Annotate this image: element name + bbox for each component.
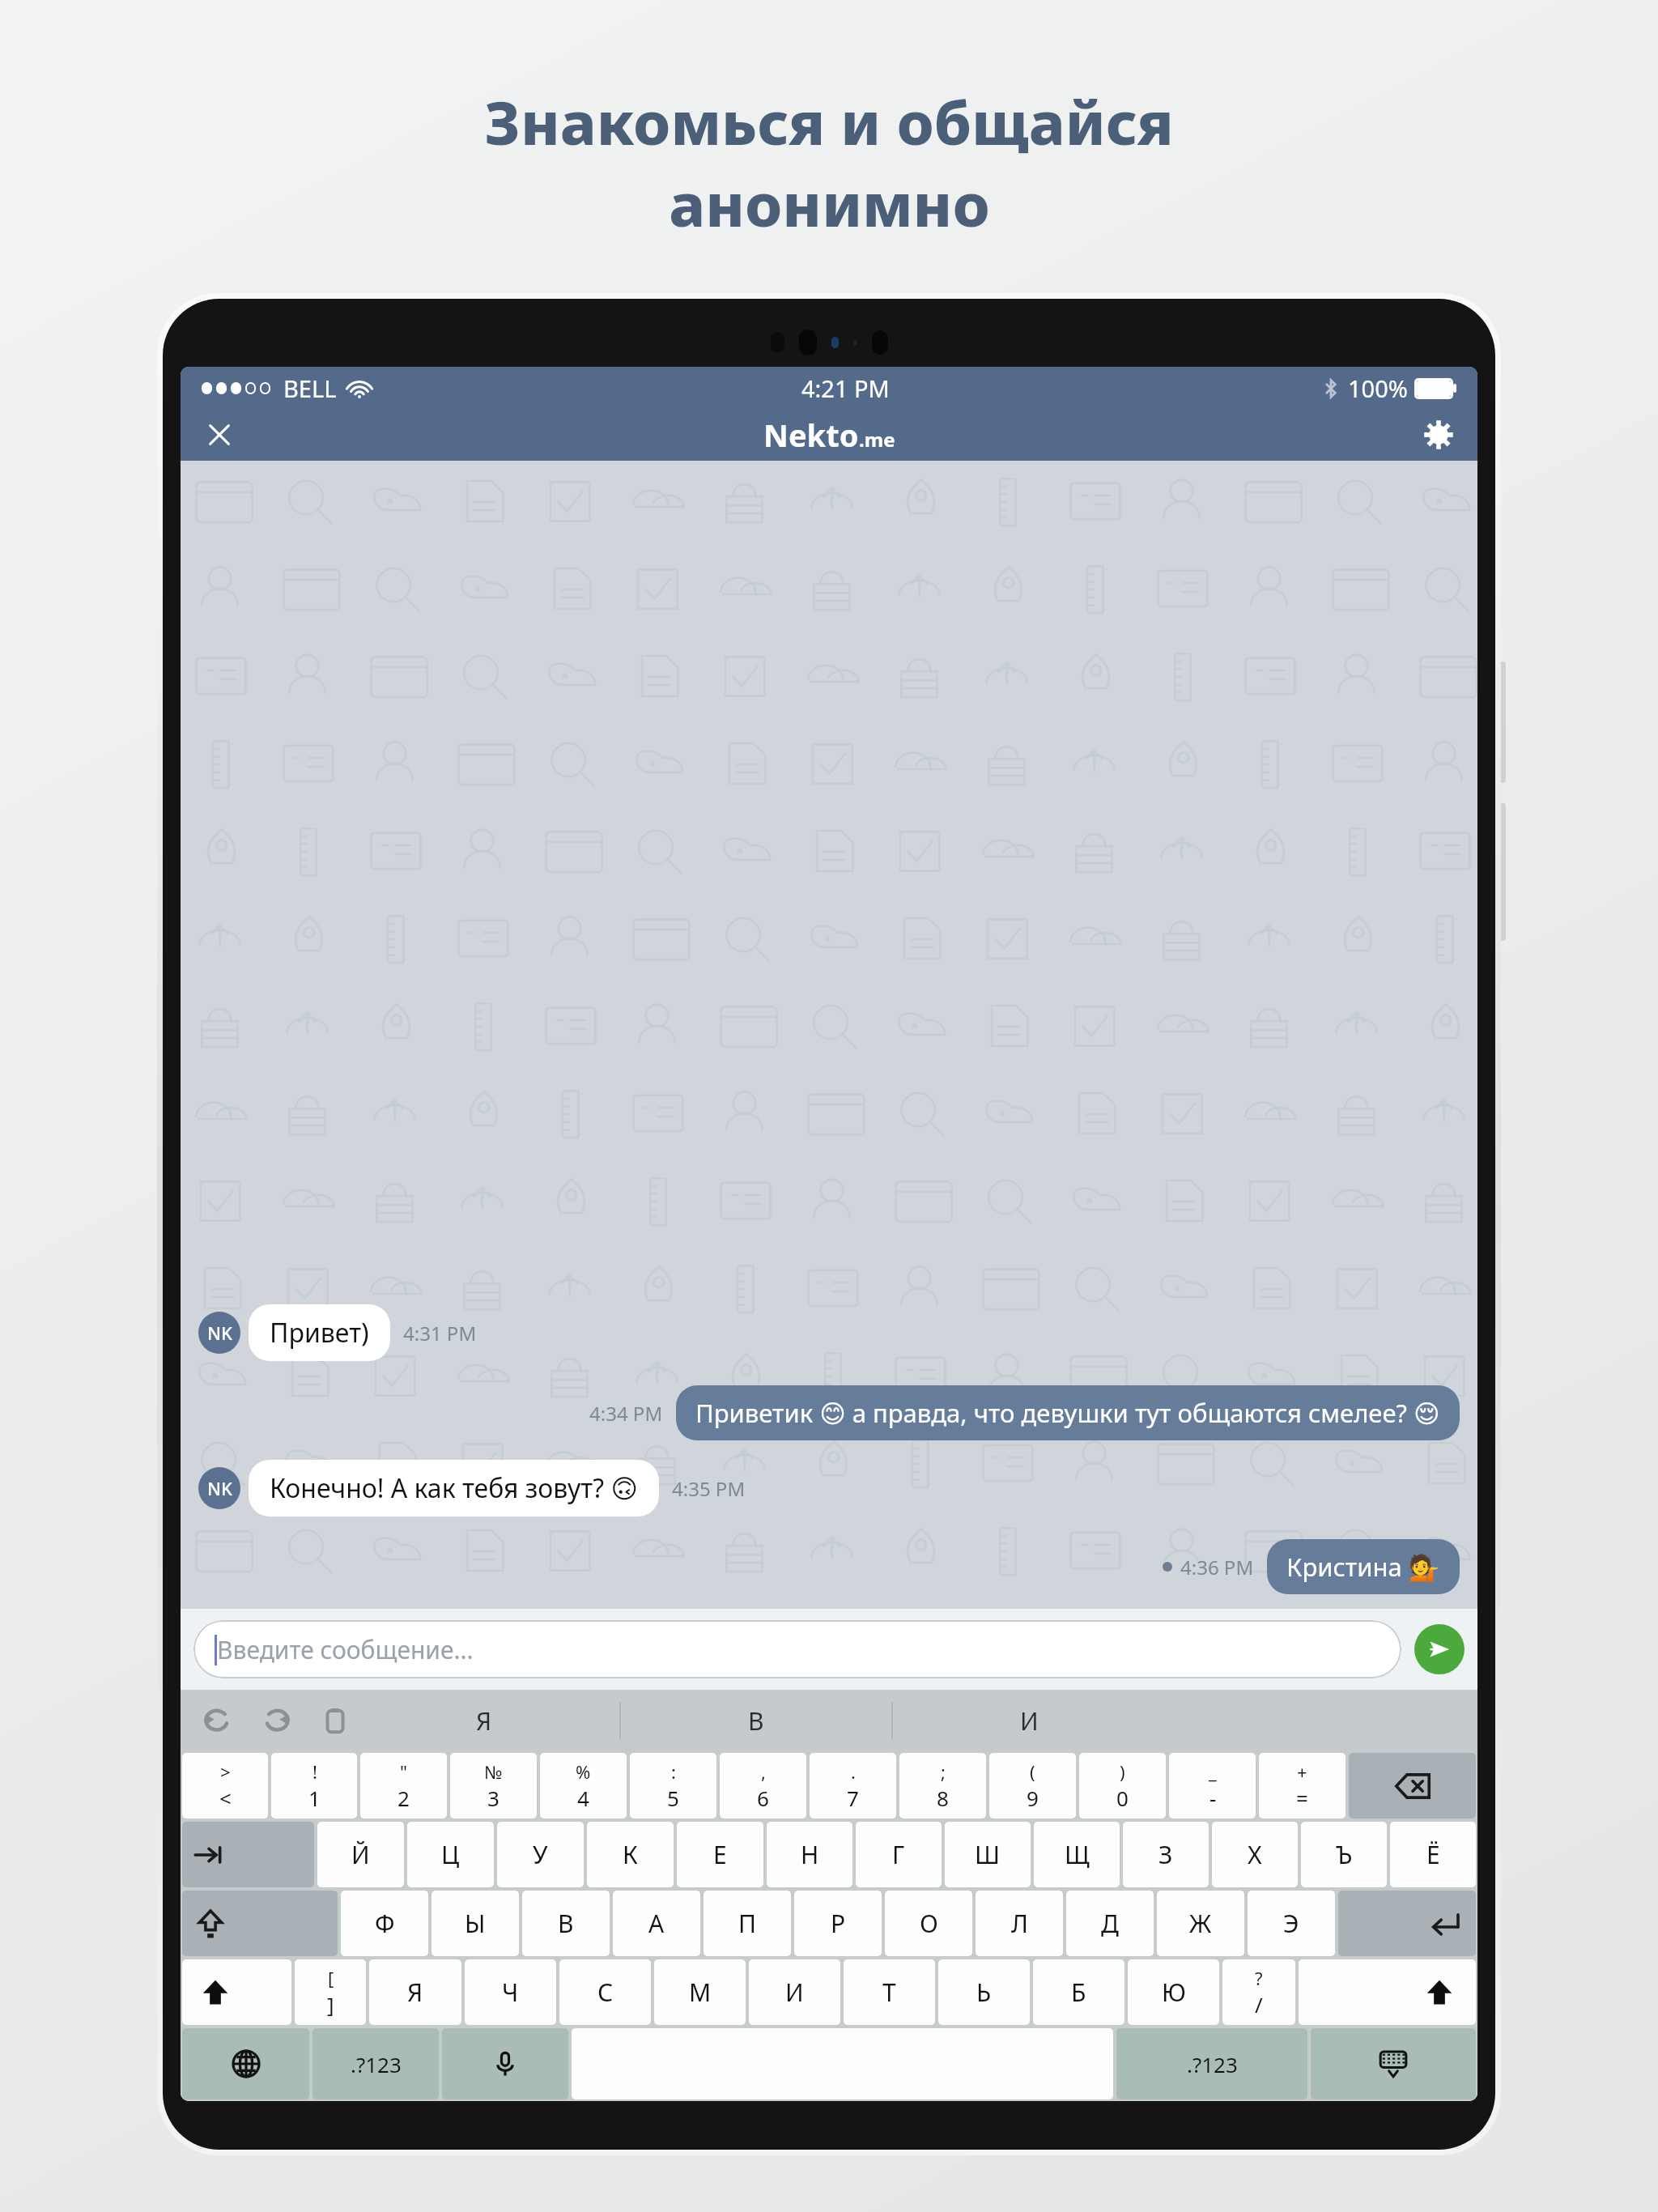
button[interactable]: ; [899,1753,986,1819]
button[interactable]: Ь [938,1959,1030,2025]
button[interactable]: Г [856,1822,942,1887]
button[interactable]: Приветик 😊 а правда, что девушки тут общ… [676,1385,1460,1440]
button[interactable]: Send [1414,1624,1465,1674]
staticText: > [220,1759,231,1784]
button[interactable]: Hide keyboard [1311,2028,1476,2099]
button[interactable]: ? [1222,1959,1295,2025]
button[interactable]: Конечно! А как тебя зовут? 🙃 [249,1460,659,1516]
button[interactable]: Э [1248,1891,1335,1956]
staticText: Ы [465,1907,486,1940]
button[interactable]: Кристина 💁 [1267,1539,1460,1594]
button[interactable]: Shift [1299,1959,1476,2025]
staticText: + [1297,1759,1307,1784]
staticText: Ш [975,1838,1001,1871]
button[interactable]: Х [1212,1822,1298,1887]
button[interactable]: М [654,1959,746,2025]
button[interactable]: _ [1169,1753,1256,1819]
button[interactable]: Caps lock [182,1891,338,1956]
staticText: Л [1011,1907,1028,1940]
button[interactable]: Shift [182,1959,291,2025]
button[interactable]: Ё [1390,1822,1476,1887]
button[interactable]: Change language [182,2028,309,2099]
button[interactable]: Ц [407,1822,494,1887]
button[interactable]: С [559,1959,651,2025]
button[interactable]: Я [369,1959,461,2025]
staticText: Введите сообщение... [217,1633,474,1666]
button[interactable]: Й [317,1822,404,1887]
button[interactable]: > [182,1753,268,1819]
button[interactable]: Close [198,414,240,456]
button[interactable]: Л [976,1891,1063,1956]
button[interactable]: Введите сообщение... [193,1620,1401,1678]
button[interactable]: О [885,1891,972,1956]
button[interactable]: Привет) [249,1304,390,1361]
button[interactable]: . [810,1753,896,1819]
button[interactable]: Ш [945,1822,1031,1887]
button[interactable]: З [1123,1822,1209,1887]
button[interactable]: П [704,1891,791,1956]
button[interactable]: Д [1066,1891,1154,1956]
staticText: Щ [1065,1838,1090,1871]
button[interactable]: Settings [1418,414,1460,456]
button[interactable]: : [630,1753,716,1819]
staticText: Ю [1162,1976,1186,2009]
staticText: 3 [487,1784,500,1812]
button[interactable]: + [1259,1753,1346,1819]
button[interactable]: Space [572,2028,1113,2099]
button[interactable]: А [613,1891,700,1956]
button[interactable]: Ю [1128,1959,1219,2025]
button[interactable]: .?123 [312,2028,439,2099]
button[interactable]: Dictation [442,2028,568,2099]
staticText: ( [1030,1759,1035,1784]
button[interactable]: .?123 [1116,2028,1307,2099]
button[interactable]: Щ [1034,1822,1120,1887]
staticText: 7 [847,1784,859,1812]
staticText: NK [207,1476,232,1500]
staticText: Я [407,1976,423,2009]
button[interactable]: Ч [465,1959,556,2025]
staticText: [ [328,1966,334,1990]
button[interactable]: В [522,1891,610,1956]
button[interactable]: Return [1338,1891,1476,1956]
staticText: , [761,1759,766,1784]
button[interactable]: Н [767,1822,852,1887]
staticText: 8 [937,1784,949,1812]
staticText: 4:31 PM [403,1320,477,1346]
button[interactable]: Ж [1157,1891,1244,1956]
button[interactable]: Tab [182,1822,314,1887]
button[interactable]: Backspace [1349,1753,1476,1819]
button[interactable]: У [497,1822,584,1887]
button[interactable]: " [360,1753,447,1819]
button[interactable]: ( [989,1753,1076,1819]
button[interactable]: Б [1033,1959,1124,2025]
button[interactable]: % [540,1753,627,1819]
button[interactable]: ! [271,1753,357,1819]
button[interactable]: К [587,1822,674,1887]
button[interactable]: [ [295,1959,366,2025]
staticText: .?123 [351,2050,402,2078]
staticText: ; [941,1759,946,1784]
staticText: NK [207,1321,232,1345]
button[interactable]: И [749,1959,840,2025]
staticText: Е [713,1838,727,1871]
button[interactable]: Ъ [1301,1822,1387,1887]
button[interactable]: Ф [341,1891,428,1956]
button[interactable]: Р [794,1891,882,1956]
staticText: Ё [1426,1838,1440,1871]
button[interactable]: ) [1079,1753,1166,1819]
button[interactable]: , [720,1753,806,1819]
button[interactable]: Ы [432,1891,519,1956]
staticText: ] [327,1990,334,2018]
staticText: 2 [397,1784,410,1812]
staticText: Г [892,1838,905,1871]
staticText: 9 [1027,1784,1039,1812]
button[interactable]: Е [677,1822,763,1887]
staticText: О [920,1907,938,1940]
staticText: И [785,1976,804,2009]
staticText: 0 [1116,1784,1129,1812]
button[interactable]: № [450,1753,537,1819]
staticText: . [851,1759,856,1784]
staticText: В [748,1704,764,1738]
staticText: < [219,1784,232,1812]
button[interactable]: Т [844,1959,935,2025]
